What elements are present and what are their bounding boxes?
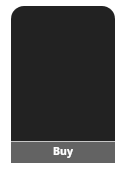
button[interactable]: Product preview — [11, 6, 115, 141]
button[interactable]: Buy — [11, 142, 115, 163]
staticText: Buy — [53, 144, 73, 158]
